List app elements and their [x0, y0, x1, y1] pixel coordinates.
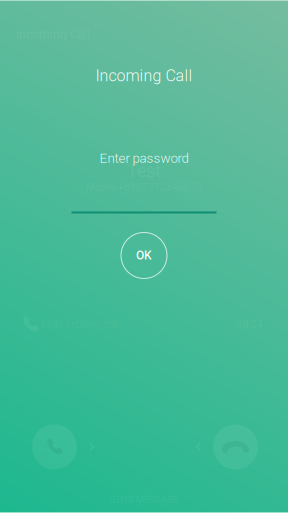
button[interactable]: SEND MESSAGE: [110, 494, 178, 505]
staticText: 10:24: [237, 318, 263, 330]
staticText: Incoming Call: [16, 27, 90, 42]
staticText: Enter password: [99, 150, 188, 166]
staticText: Mobile +8801712345678: [86, 181, 202, 193]
button[interactable]: Answer call: [32, 424, 77, 469]
staticText: OK: [136, 248, 152, 262]
button[interactable]: Decline call: [213, 424, 258, 469]
button[interactable]: OK: [121, 232, 167, 278]
staticText: Incoming Call: [95, 66, 192, 85]
staticText: SEND MESSAGE: [110, 494, 178, 505]
staticText: Test: [127, 160, 161, 182]
staticText: Mute ongoing call: [41, 318, 117, 330]
